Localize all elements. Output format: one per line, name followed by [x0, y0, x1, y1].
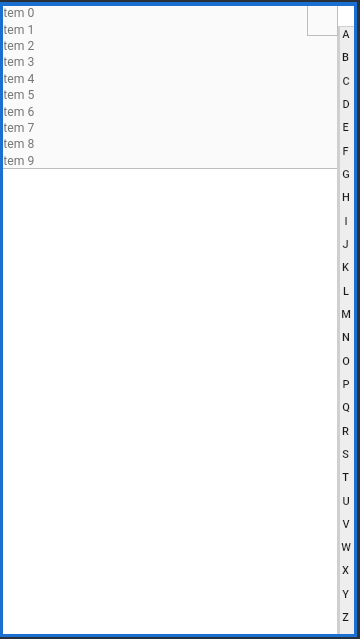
- button[interactable]: Item 1: [3, 22, 337, 38]
- button[interactable]: Item 5: [3, 87, 337, 103]
- staticText: Item 1: [4, 23, 35, 37]
- staticText: D: [342, 98, 350, 111]
- button[interactable]: P: [337, 373, 354, 396]
- button[interactable]: U: [337, 490, 354, 513]
- staticText: Item 9: [4, 154, 35, 168]
- button[interactable]: S: [337, 443, 354, 466]
- staticText: G: [342, 168, 350, 181]
- staticText: L: [343, 285, 349, 298]
- button[interactable]: Item 2: [3, 38, 337, 54]
- button[interactable]: A: [337, 23, 354, 46]
- staticText: Y: [342, 588, 349, 601]
- button[interactable]: W: [337, 536, 354, 559]
- button[interactable]: I: [337, 210, 354, 233]
- staticText: Z: [342, 611, 349, 624]
- button[interactable]: C: [337, 70, 354, 93]
- staticText: Item 2: [4, 39, 35, 53]
- button[interactable]: F: [337, 140, 354, 163]
- staticText: Q: [342, 401, 350, 414]
- button[interactable]: N: [337, 326, 354, 349]
- staticText: S: [342, 448, 349, 461]
- staticText: Item 7: [4, 121, 35, 135]
- button[interactable]: J: [337, 233, 354, 256]
- button[interactable]: Z: [337, 606, 354, 629]
- staticText: M: [341, 308, 351, 321]
- staticText: Item 8: [4, 137, 35, 151]
- button[interactable]: K: [337, 256, 354, 279]
- staticText: U: [342, 495, 350, 508]
- button[interactable]: Item 0: [3, 6, 337, 21]
- button[interactable]: Item 3: [3, 54, 337, 70]
- staticText: W: [341, 541, 351, 554]
- staticText: J: [342, 238, 349, 251]
- button[interactable]: Y: [337, 583, 354, 606]
- button[interactable]: Item 6: [3, 104, 337, 120]
- button[interactable]: Current section: [307, 6, 338, 36]
- button[interactable]: G: [337, 163, 354, 186]
- button[interactable]: Q: [337, 396, 354, 419]
- button[interactable]: Item 8: [3, 136, 337, 152]
- button[interactable]: X: [337, 559, 354, 582]
- staticText: F: [342, 145, 349, 158]
- button[interactable]: R: [337, 420, 354, 443]
- staticText: R: [342, 425, 349, 438]
- button[interactable]: L: [337, 280, 354, 303]
- button[interactable]: B: [337, 46, 354, 69]
- staticText: K: [342, 261, 349, 274]
- button[interactable]: D: [337, 93, 354, 116]
- other: Alphabet index: [337, 26, 354, 634]
- staticText: Item 4: [4, 72, 35, 86]
- staticText: V: [342, 518, 350, 531]
- staticText: Item 6: [4, 105, 35, 119]
- staticText: Item 5: [4, 88, 35, 102]
- button[interactable]: V: [337, 513, 354, 536]
- staticText: N: [342, 331, 350, 344]
- staticText: Item 0: [4, 6, 35, 20]
- staticText: X: [342, 564, 349, 577]
- staticText: B: [342, 51, 349, 64]
- staticText: I: [344, 215, 348, 228]
- staticText: Item 3: [4, 55, 35, 69]
- button[interactable]: E: [337, 116, 354, 139]
- staticText: A: [342, 28, 350, 41]
- button[interactable]: Item 9: [3, 153, 337, 169]
- button[interactable]: T: [337, 466, 354, 489]
- button[interactable]: Item 7: [3, 120, 337, 136]
- staticText: T: [342, 471, 349, 484]
- button[interactable]: Item 4: [3, 71, 337, 87]
- staticText: H: [342, 191, 350, 204]
- staticText: O: [342, 355, 350, 368]
- button[interactable]: H: [337, 186, 354, 209]
- button[interactable]: O: [337, 350, 354, 373]
- button[interactable]: M: [337, 303, 354, 326]
- staticText: C: [342, 75, 350, 88]
- staticText: P: [342, 378, 350, 391]
- staticText: E: [342, 121, 349, 134]
